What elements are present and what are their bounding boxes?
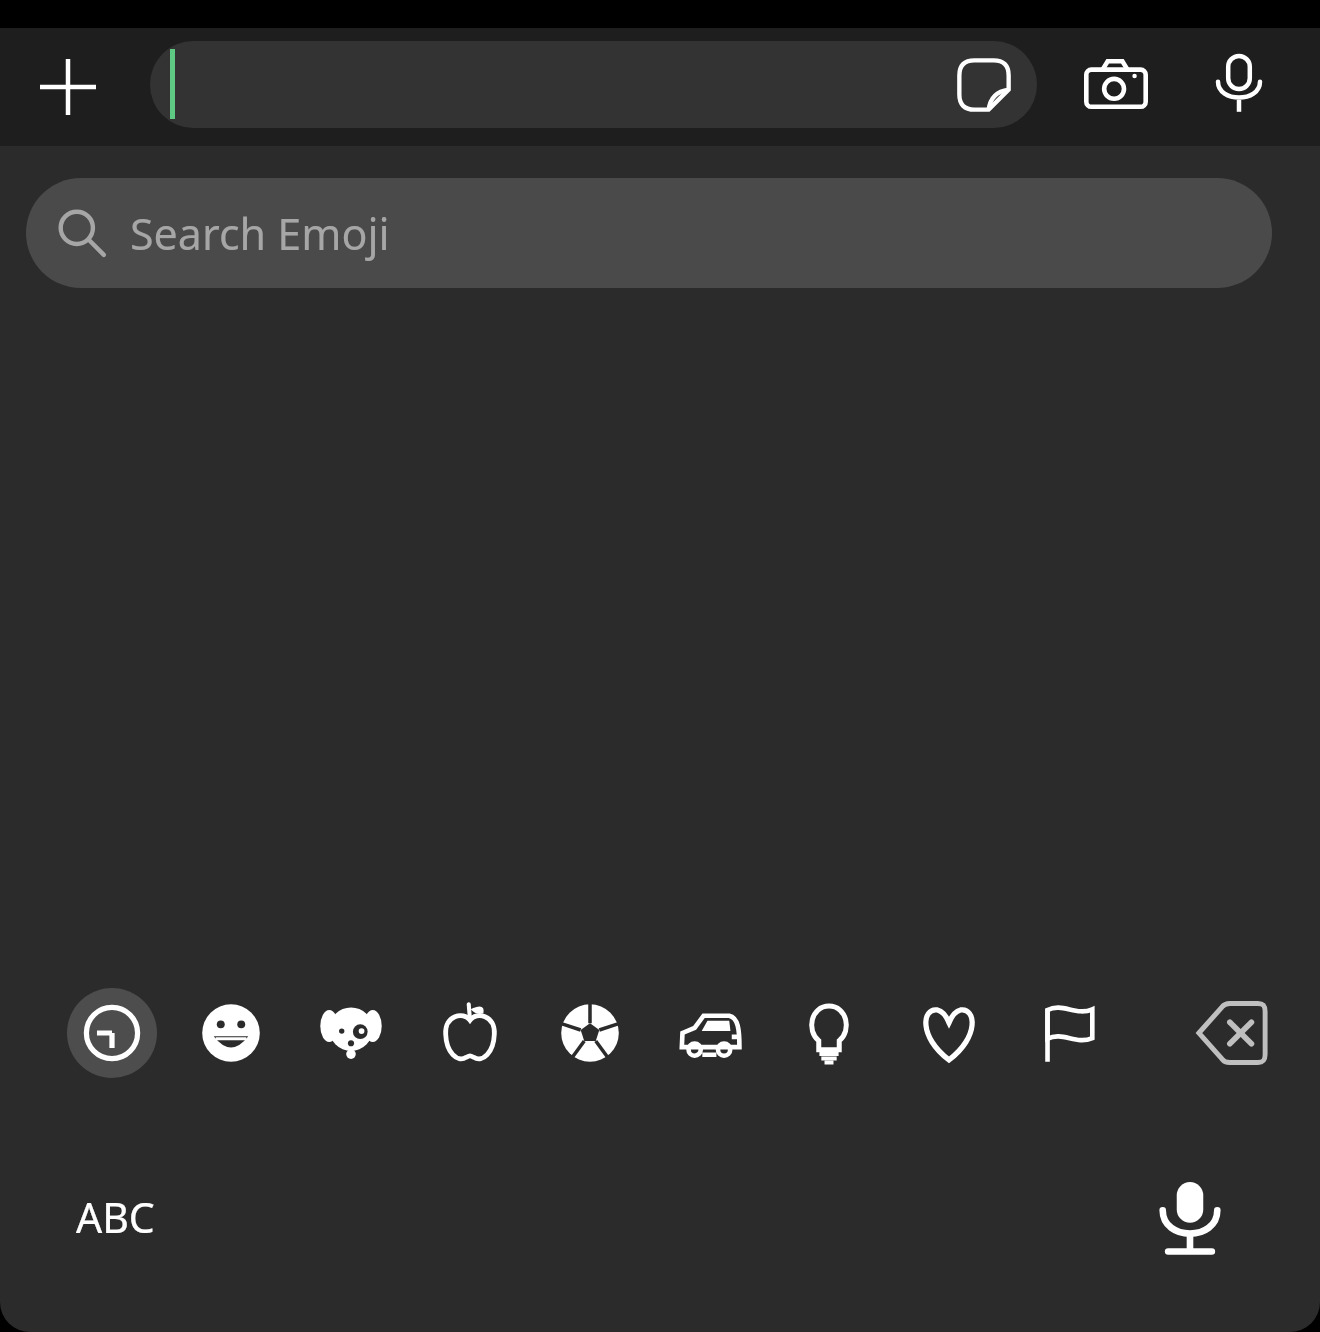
button[interactable]: Camera — [1073, 42, 1159, 128]
button[interactable]: Voice message — [1196, 40, 1282, 126]
button[interactable]: Search Emoji — [26, 178, 1272, 288]
staticText: Search Emoji — [130, 204, 390, 263]
button[interactable]: Recent — [57, 978, 167, 1088]
button[interactable]: Flags — [1013, 978, 1123, 1088]
button[interactable]: Travel and places — [655, 978, 765, 1088]
button[interactable]: Animals and nature — [296, 978, 406, 1088]
button[interactable]: Activities — [535, 978, 645, 1088]
button[interactable]: Smileys and people — [176, 978, 286, 1088]
button[interactable]: Voice input — [1138, 1166, 1242, 1270]
button[interactable]: Backspace — [1177, 978, 1287, 1088]
button[interactable]: Attach — [22, 41, 114, 133]
button[interactable]: Stickers — [947, 48, 1021, 122]
button[interactable]: ABC — [50, 1172, 180, 1262]
staticText: ABC — [76, 1189, 155, 1245]
button[interactable]: Stickers — [150, 41, 1037, 128]
button[interactable]: Objects — [774, 978, 884, 1088]
button[interactable]: Food and drink — [415, 978, 525, 1088]
button[interactable]: Symbols — [894, 978, 1004, 1088]
